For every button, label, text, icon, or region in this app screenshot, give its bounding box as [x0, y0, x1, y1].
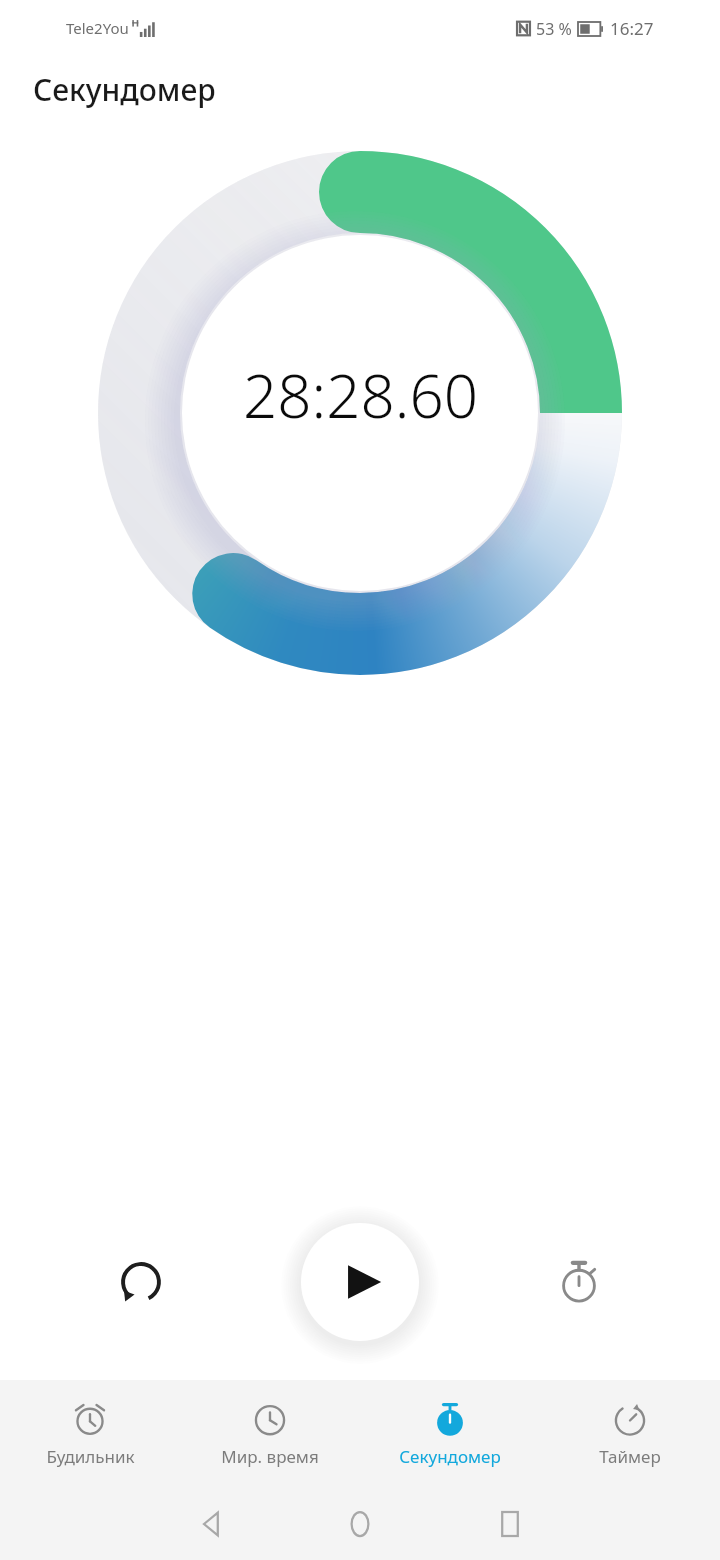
staticText: Мир. время: [221, 1445, 319, 1468]
staticText: 53 %: [536, 18, 572, 40]
staticText: Секундомер: [33, 69, 216, 110]
button[interactable]: Таймер: [540, 1392, 720, 1476]
button[interactable]: Запустить: [301, 1223, 419, 1341]
button[interactable]: Назад: [135, 1488, 285, 1560]
button[interactable]: Сброс: [105, 1246, 177, 1318]
staticText: 28:28.60: [243, 354, 478, 436]
staticText: Tele2You: [66, 18, 129, 38]
staticText: 16:27: [610, 17, 654, 40]
button[interactable]: Мир. время: [180, 1392, 360, 1476]
button[interactable]: Круг: [543, 1246, 615, 1318]
staticText: Будильник: [46, 1445, 135, 1468]
button[interactable]: Будильник: [0, 1392, 180, 1476]
button[interactable]: Главный экран: [285, 1488, 435, 1560]
button[interactable]: Последние приложения: [435, 1488, 585, 1560]
button[interactable]: Секундомер: [360, 1392, 540, 1476]
staticText: Секундомер: [399, 1445, 501, 1468]
staticText: Таймер: [599, 1445, 661, 1468]
